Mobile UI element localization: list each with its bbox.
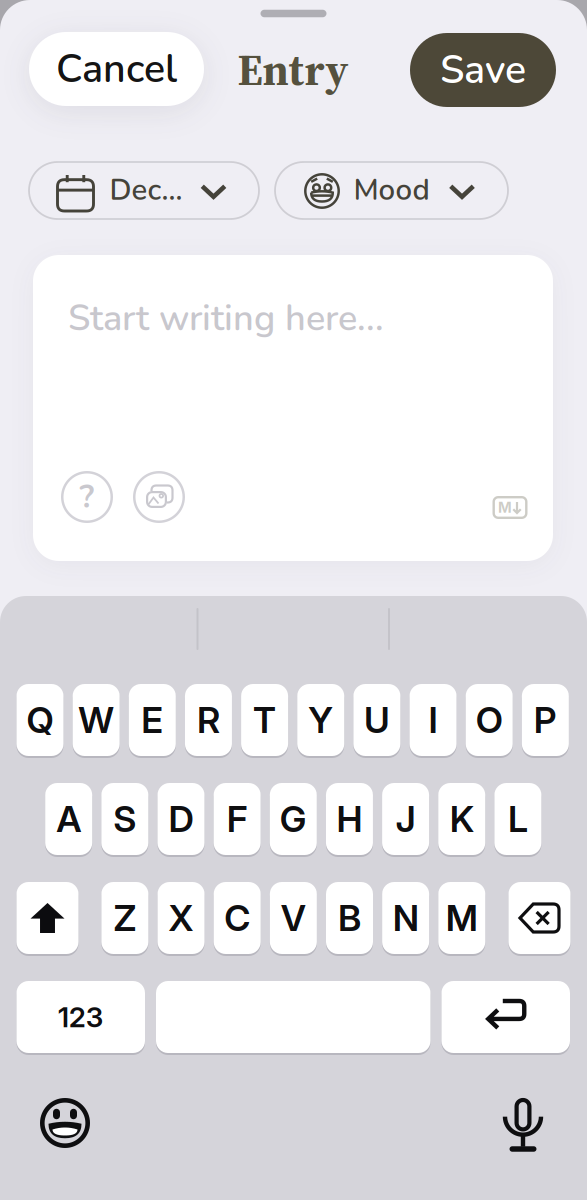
button[interactable]: U (353, 683, 400, 757)
staticText: 123 (58, 1000, 104, 1034)
button[interactable]: F (214, 782, 261, 856)
staticText: W (78, 698, 114, 742)
staticText: O (476, 698, 503, 742)
button[interactable]: S (101, 782, 148, 856)
staticText: U (364, 698, 390, 742)
button[interactable]: M (438, 881, 485, 955)
button[interactable]: X (158, 881, 205, 955)
button[interactable]: Help (61, 471, 113, 523)
staticText: J (396, 797, 416, 841)
staticText: D (168, 797, 193, 841)
button[interactable]: Shift (16, 881, 78, 955)
staticText: Cancel (56, 42, 177, 96)
staticText: V (281, 896, 306, 940)
button[interactable]: Dec... (29, 162, 259, 219)
staticText: K (450, 797, 474, 841)
staticText: F (227, 797, 248, 841)
staticText: C (224, 896, 250, 940)
staticText: I (429, 698, 438, 742)
button[interactable]: N (382, 881, 429, 955)
button[interactable]: Markdown (492, 496, 527, 519)
button[interactable]: P (522, 683, 569, 757)
staticText: P (534, 698, 557, 742)
staticText: L (508, 797, 528, 841)
staticText: Q (26, 698, 53, 742)
button[interactable]: Add photo (133, 471, 185, 523)
staticText: M (446, 896, 478, 940)
staticText: Save (440, 43, 526, 97)
button[interactable]: Q (16, 683, 63, 757)
button[interactable]: Dictate (495, 1090, 551, 1154)
button[interactable]: I (410, 683, 457, 757)
staticText: G (280, 797, 307, 841)
button[interactable]: 123 (16, 980, 145, 1054)
staticText: A (56, 797, 81, 841)
button[interactable]: T (241, 683, 288, 757)
staticText: ? (79, 475, 94, 519)
button[interactable]: E (129, 683, 176, 757)
button[interactable]: Save (410, 33, 556, 107)
button[interactable]: Emoji (40, 1098, 90, 1148)
button[interactable]: D (157, 782, 204, 856)
staticText: X (169, 896, 194, 940)
button[interactable]: Z (101, 881, 148, 955)
button[interactable]: B (326, 881, 373, 955)
button[interactable]: Cancel (29, 32, 204, 106)
button[interactable]: R (185, 683, 232, 757)
button[interactable]: Return (441, 980, 570, 1054)
button[interactable]: L (494, 782, 541, 856)
button[interactable]: H (326, 782, 373, 856)
button[interactable]: Y (297, 683, 344, 757)
staticText: T (253, 698, 276, 742)
button[interactable]: A (45, 782, 92, 856)
staticText: S (113, 797, 136, 841)
staticText: R (197, 698, 220, 742)
button[interactable]: K (438, 782, 485, 856)
button[interactable]: W (73, 683, 120, 757)
button[interactable]: J (382, 782, 429, 856)
button[interactable]: Mood (275, 162, 508, 219)
button[interactable]: Delete (508, 881, 570, 955)
button[interactable]: Space (156, 980, 430, 1054)
button[interactable]: O (466, 683, 513, 757)
staticText: Entry (237, 39, 348, 100)
button[interactable]: C (214, 881, 261, 955)
staticText: Y (308, 698, 333, 742)
button[interactable]: G (270, 782, 317, 856)
staticText: M (498, 499, 512, 516)
staticText: Z (113, 896, 136, 940)
staticText: E (141, 698, 163, 742)
staticText: H (336, 797, 362, 841)
staticText: Start writing here... (68, 294, 384, 343)
staticText: Dec... (109, 170, 182, 210)
staticText: B (338, 896, 361, 940)
button[interactable]: V (270, 881, 317, 955)
staticText: Mood (353, 170, 429, 210)
staticText: N (393, 896, 419, 940)
